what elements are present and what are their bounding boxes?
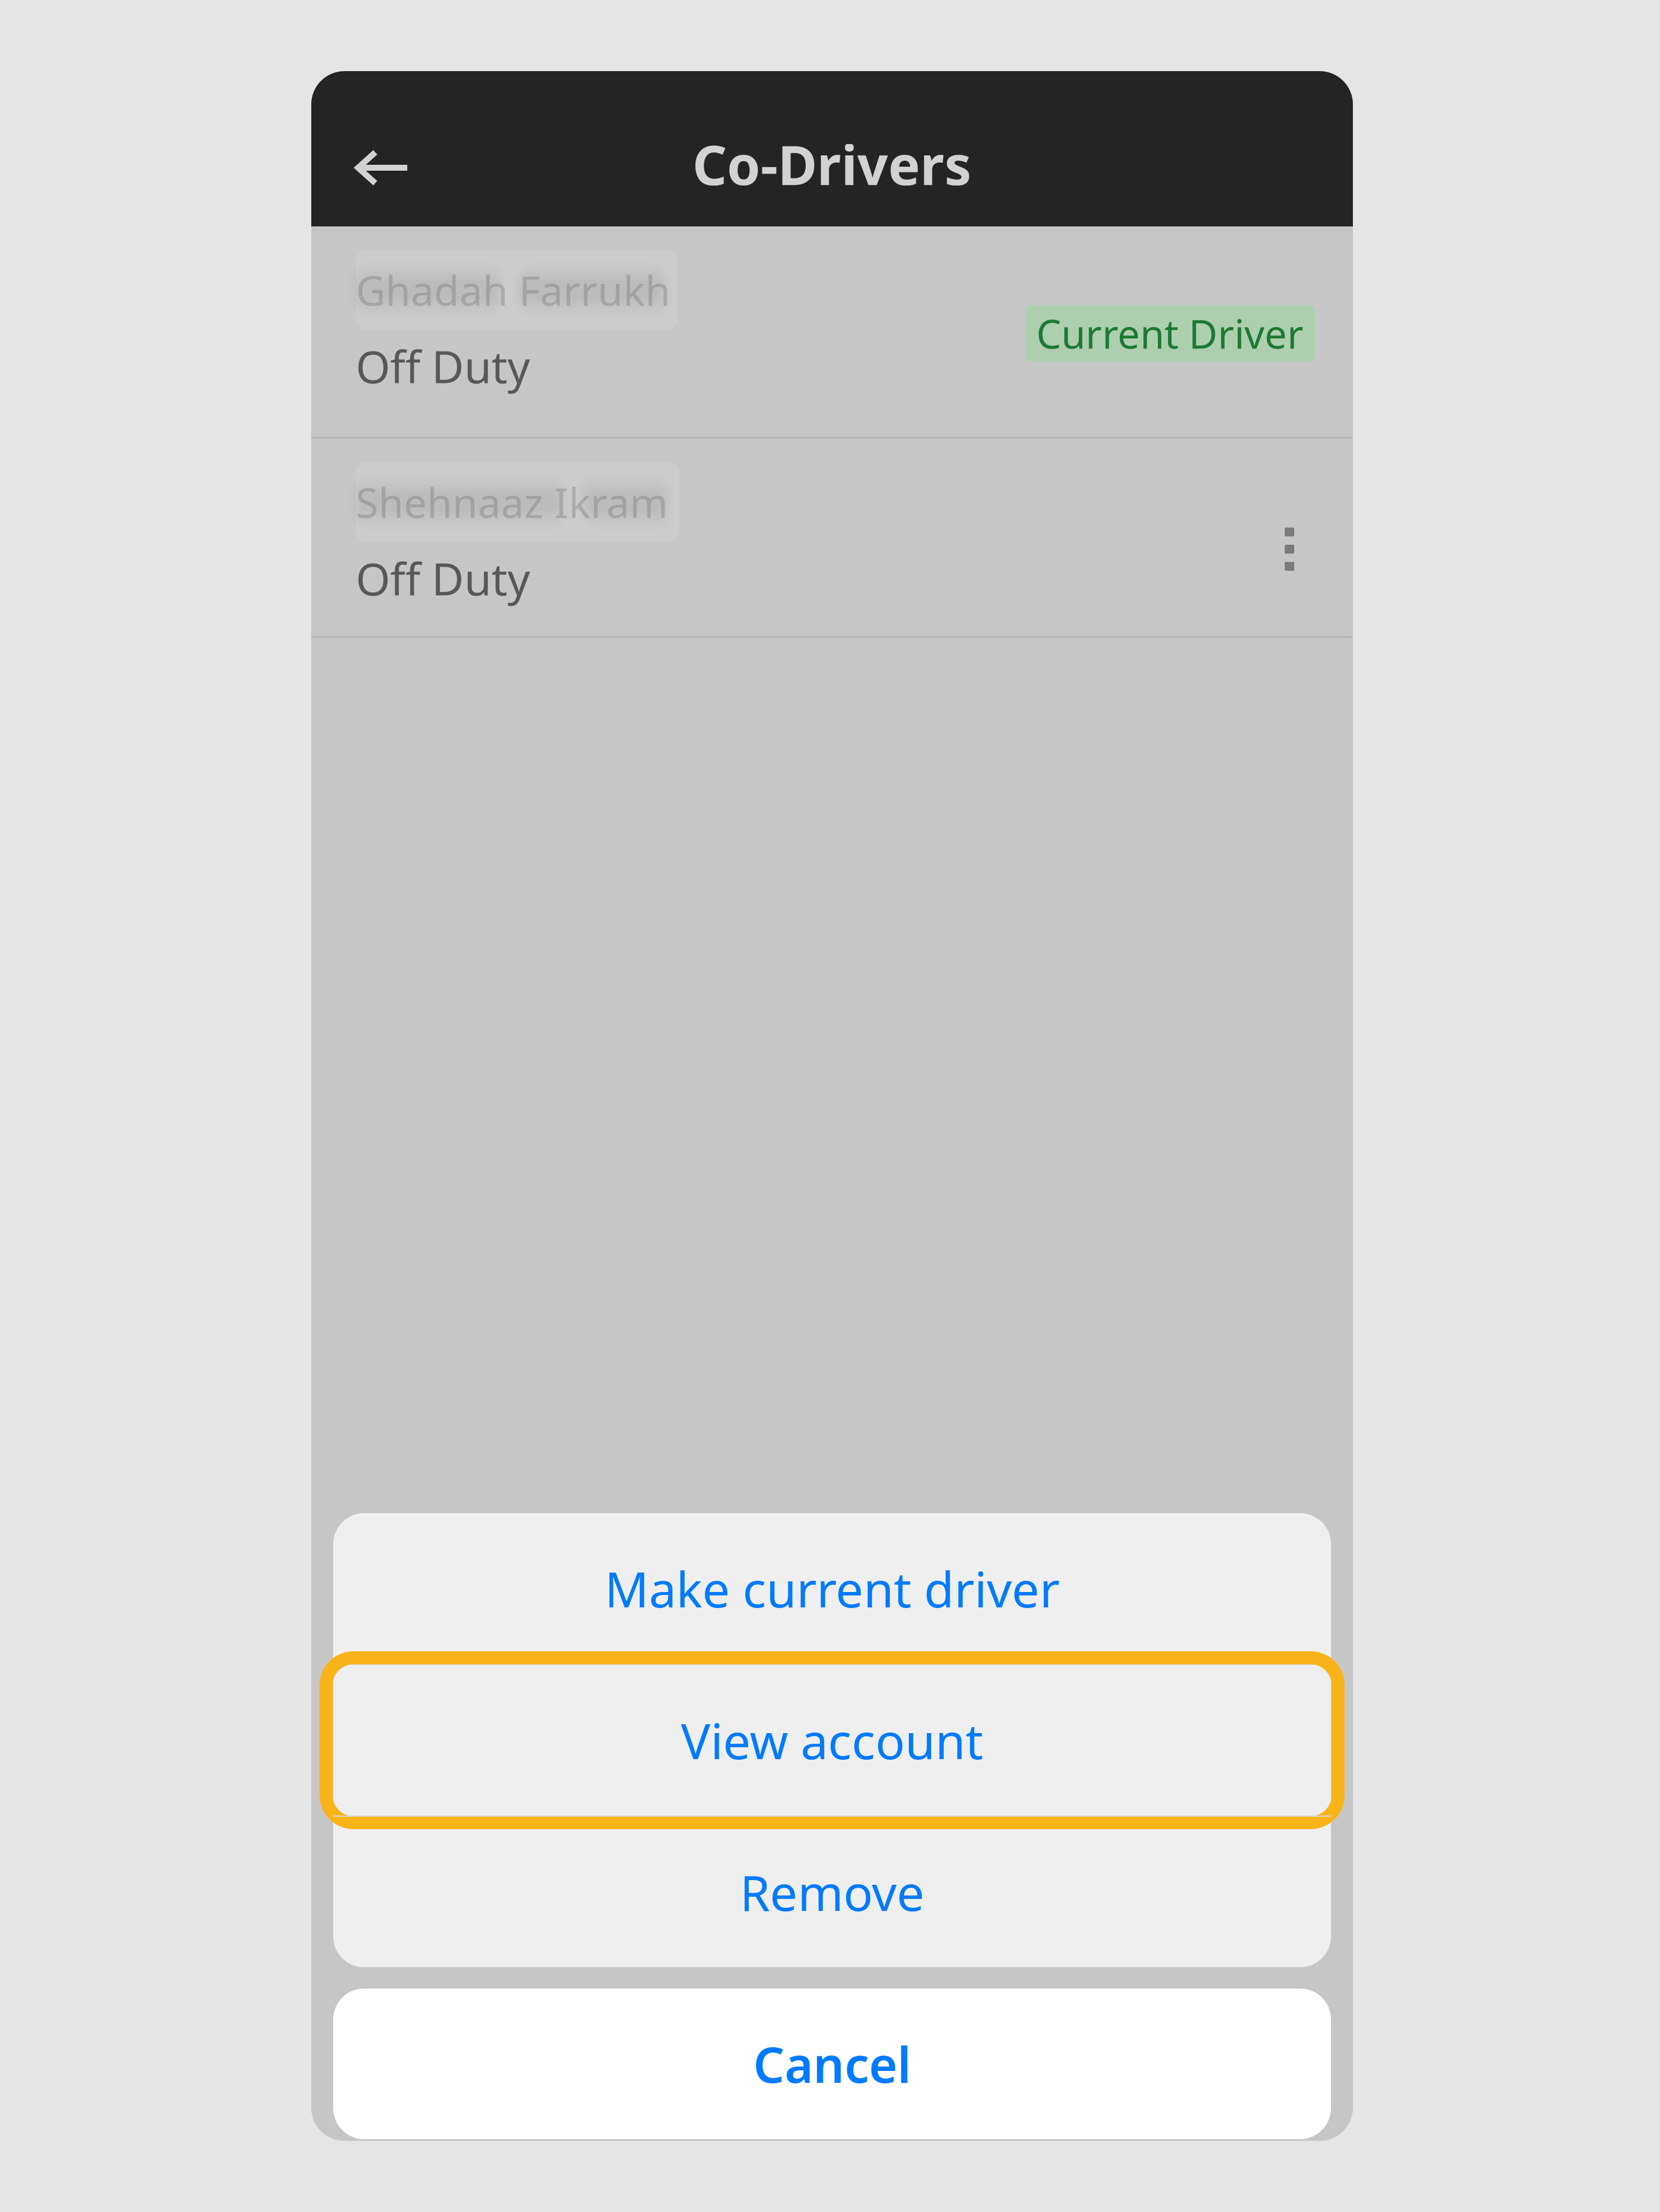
staticText: Off Duty xyxy=(356,337,530,395)
staticText: Off Duty xyxy=(356,549,530,608)
staticText: Co-Drivers xyxy=(692,128,972,200)
button[interactable]: Cancel xyxy=(333,1989,1331,2139)
button[interactable]: Back xyxy=(311,71,448,226)
button[interactable]: Remove xyxy=(333,1817,1331,1967)
staticText: Current Driver xyxy=(1036,307,1304,360)
staticText: View account xyxy=(681,1708,983,1773)
staticText: Remove xyxy=(740,1859,925,1924)
staticText: Make current driver xyxy=(604,1556,1060,1621)
button[interactable]: View account xyxy=(333,1665,1331,1815)
button[interactable]: Make current driver xyxy=(333,1513,1331,1664)
button[interactable]: More options xyxy=(1235,439,1315,636)
staticText: Shehnaaz Ikram xyxy=(356,475,668,529)
staticText: Ghadah Farrukh xyxy=(356,263,671,317)
staticText: Cancel xyxy=(753,2031,911,2096)
